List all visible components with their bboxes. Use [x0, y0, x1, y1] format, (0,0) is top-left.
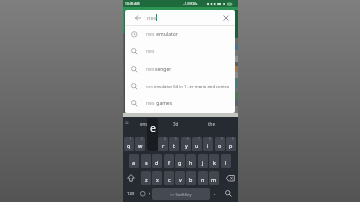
staticText: g: [178, 159, 182, 166]
button[interactable]: m: [209, 171, 219, 185]
button[interactable]: s: [141, 154, 151, 168]
staticText: nes: [146, 48, 155, 55]
button[interactable]: u: [192, 137, 202, 151]
staticText: v: [179, 176, 182, 183]
staticText: ens: [140, 121, 148, 127]
staticText: nes: [146, 100, 155, 107]
staticText: >> SwiftKey: [170, 192, 192, 197]
staticText: s: [145, 159, 148, 166]
staticText: z: [145, 176, 148, 183]
staticText: emulator 64 in 1 ..er mario and contra: [153, 84, 229, 90]
button[interactable]: 123: [124, 187, 137, 200]
button[interactable]: ens: [131, 117, 157, 130]
button[interactable]: c: [164, 171, 174, 185]
button[interactable]: nes: [125, 10, 235, 25]
staticText: 6: [187, 137, 189, 141]
staticText: nes: [146, 66, 155, 73]
staticText: q: [127, 142, 131, 149]
button[interactable]: [221, 187, 235, 200]
staticText: nes: [146, 31, 155, 38]
staticText: 0: [232, 137, 234, 141]
button[interactable]: the: [198, 117, 225, 130]
staticText: t: [173, 142, 175, 149]
button[interactable]: l: [221, 154, 231, 168]
staticText: ..1.59KB/s: [183, 2, 198, 6]
button[interactable]: d: [152, 154, 162, 168]
button[interactable]: [223, 171, 237, 185]
staticText: 1: [130, 137, 132, 141]
button[interactable]: [135, 15, 141, 21]
button[interactable]: [124, 171, 138, 185]
staticText: f: [168, 159, 170, 166]
button[interactable]: g: [175, 154, 185, 168]
staticText: 5: [175, 137, 177, 141]
staticText: j: [202, 159, 204, 166]
button[interactable]: z: [141, 171, 151, 185]
button[interactable]: nes: [125, 26, 235, 43]
staticText: r: [162, 142, 165, 149]
button[interactable]: ,: [147, 187, 153, 200]
staticText: 2: [141, 137, 143, 141]
button[interactable]: y: [181, 137, 191, 151]
button[interactable]: i: [203, 137, 213, 151]
staticText: nes: [147, 14, 157, 21]
staticText: 123: [127, 191, 135, 197]
button[interactable]: r: [158, 137, 168, 151]
staticText: 3d: [173, 121, 179, 127]
staticText: w: [138, 142, 143, 149]
button[interactable]: [223, 15, 229, 21]
staticText: l: [225, 159, 227, 166]
staticText: games: [155, 100, 173, 107]
button[interactable]: v: [175, 171, 185, 185]
staticText: i: [207, 142, 209, 149]
staticText: k: [213, 159, 216, 166]
staticText: x: [156, 176, 159, 183]
button[interactable]: k: [209, 154, 219, 168]
button[interactable]: >> SwiftKey: [152, 188, 210, 200]
button[interactable]: n: [198, 171, 208, 185]
staticText: the: [208, 121, 215, 127]
button[interactable]: q: [124, 137, 134, 151]
staticText: .: [214, 189, 216, 196]
button[interactable]: o: [215, 137, 225, 151]
staticText: h: [189, 159, 193, 166]
staticText: senger: [155, 66, 172, 73]
staticText: a: [132, 159, 136, 166]
button[interactable]: nes: [125, 43, 235, 60]
button[interactable]: [137, 187, 147, 200]
button[interactable]: a: [129, 154, 139, 168]
button[interactable]: b: [186, 171, 196, 185]
button[interactable]: nes: [125, 78, 235, 95]
button[interactable]: f: [164, 154, 174, 168]
button[interactable]: nes: [125, 95, 235, 112]
button[interactable]: nes: [125, 61, 235, 78]
staticText: m: [211, 176, 217, 183]
staticText: d: [155, 159, 159, 166]
staticText: emulator: [155, 31, 178, 38]
staticText: 8: [209, 137, 211, 141]
staticText: nes: [146, 84, 153, 90]
staticText: c: [168, 176, 171, 183]
button[interactable]: p: [226, 137, 236, 151]
button[interactable]: j: [198, 154, 208, 168]
staticText: n: [201, 176, 205, 183]
staticText: u: [195, 142, 199, 149]
staticText: 10:35 AM: [125, 1, 140, 5]
staticText: 9: [221, 137, 223, 141]
button[interactable]: .: [211, 187, 219, 200]
button[interactable]: h: [186, 154, 196, 168]
staticText: y: [185, 142, 188, 149]
button[interactable]: t: [169, 137, 179, 151]
button[interactable]: x: [152, 171, 162, 185]
button[interactable]: w: [135, 137, 145, 151]
button[interactable]: 3d: [162, 117, 189, 130]
staticText: e: [150, 121, 156, 135]
staticText: o: [218, 142, 222, 149]
staticText: p: [229, 142, 233, 149]
staticText: 7: [198, 137, 200, 141]
staticText: b: [189, 176, 193, 183]
staticText: ,: [149, 189, 151, 196]
